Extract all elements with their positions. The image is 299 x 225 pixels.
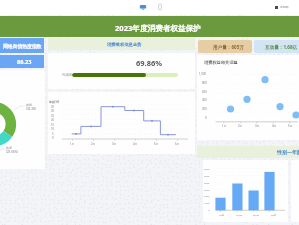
staticText: 80-90 [253,213,260,216]
staticText: 2023年度消费者权益保护 [115,23,201,33]
staticText: 互动量：1.68亿 [265,44,298,50]
staticText: 3月 [255,124,260,128]
staticText: 200 [202,107,207,111]
staticText: 1,000 [199,72,207,76]
button[interactable]: Mobile preview [156,3,164,11]
staticText: 5月 [154,142,159,146]
staticText: 90后 [271,213,277,216]
staticText: 1月 [70,142,75,146]
staticText: 出码器 [280,5,289,9]
button[interactable]: Desktop preview [139,3,147,11]
staticText: 单位(万) [49,100,60,104]
staticText: 86.23 [17,58,32,66]
staticText: 10 [51,127,54,131]
staticText: 0 [208,208,210,211]
button[interactable]: 网络舆情热度指数 [0,38,44,53]
staticText: 4月 [272,124,277,128]
button[interactable]: 86.23 [0,55,44,68]
staticText: 网络舆情热度指数 [3,43,42,49]
staticText: 20 [51,118,54,122]
button[interactable]: Scan QR code [275,5,289,9]
staticText: 3000 [204,188,210,191]
staticText: 30 [51,109,54,113]
button[interactable]: 消费维权信息走势 [48,38,195,50]
staticText: 600 [202,90,207,94]
staticText: 70-80 [236,213,243,216]
staticText: 热度 (23.66%) [6,146,18,154]
button[interactable]: 用户量：605万 [198,40,252,53]
staticText: 2月 [238,124,243,128]
staticText: 1000 [204,201,210,204]
staticText: 消费维权信息走势 [107,42,142,47]
staticText: 0 [205,116,207,120]
staticText: 0 [52,136,54,140]
staticText: 25 [51,114,54,118]
staticText: 6月 [175,142,180,146]
staticText: 69.86% [136,58,163,68]
staticText: 5000 [204,174,210,177]
staticText: 性别—年龄 [277,149,299,156]
staticText: 70前 [219,213,225,216]
staticText: 2月 [91,142,96,146]
staticText: 3月 [112,142,117,146]
staticText: 用户量：605万 [213,44,244,50]
staticText: 4000 [204,181,210,184]
staticText: 舆情 (32.3%) [26,103,37,111]
button[interactable]: 性别—年龄 [197,146,299,158]
staticText: 5月 [288,124,293,128]
staticText: 4月 [133,142,138,146]
staticText: 1月 [222,124,227,128]
staticText: 2000 [204,194,210,197]
button[interactable]: 互动量：1.68亿 [254,40,299,53]
staticText: 400 [202,98,207,102]
staticText: 消费权益相关话题 [204,60,238,65]
staticText: 35 [51,105,54,109]
staticText: 完成度 [62,73,73,77]
staticText: 15 [51,123,54,127]
staticText: 6000 [204,167,210,170]
staticText: 5 [52,132,54,136]
staticText: 800 [202,81,207,85]
